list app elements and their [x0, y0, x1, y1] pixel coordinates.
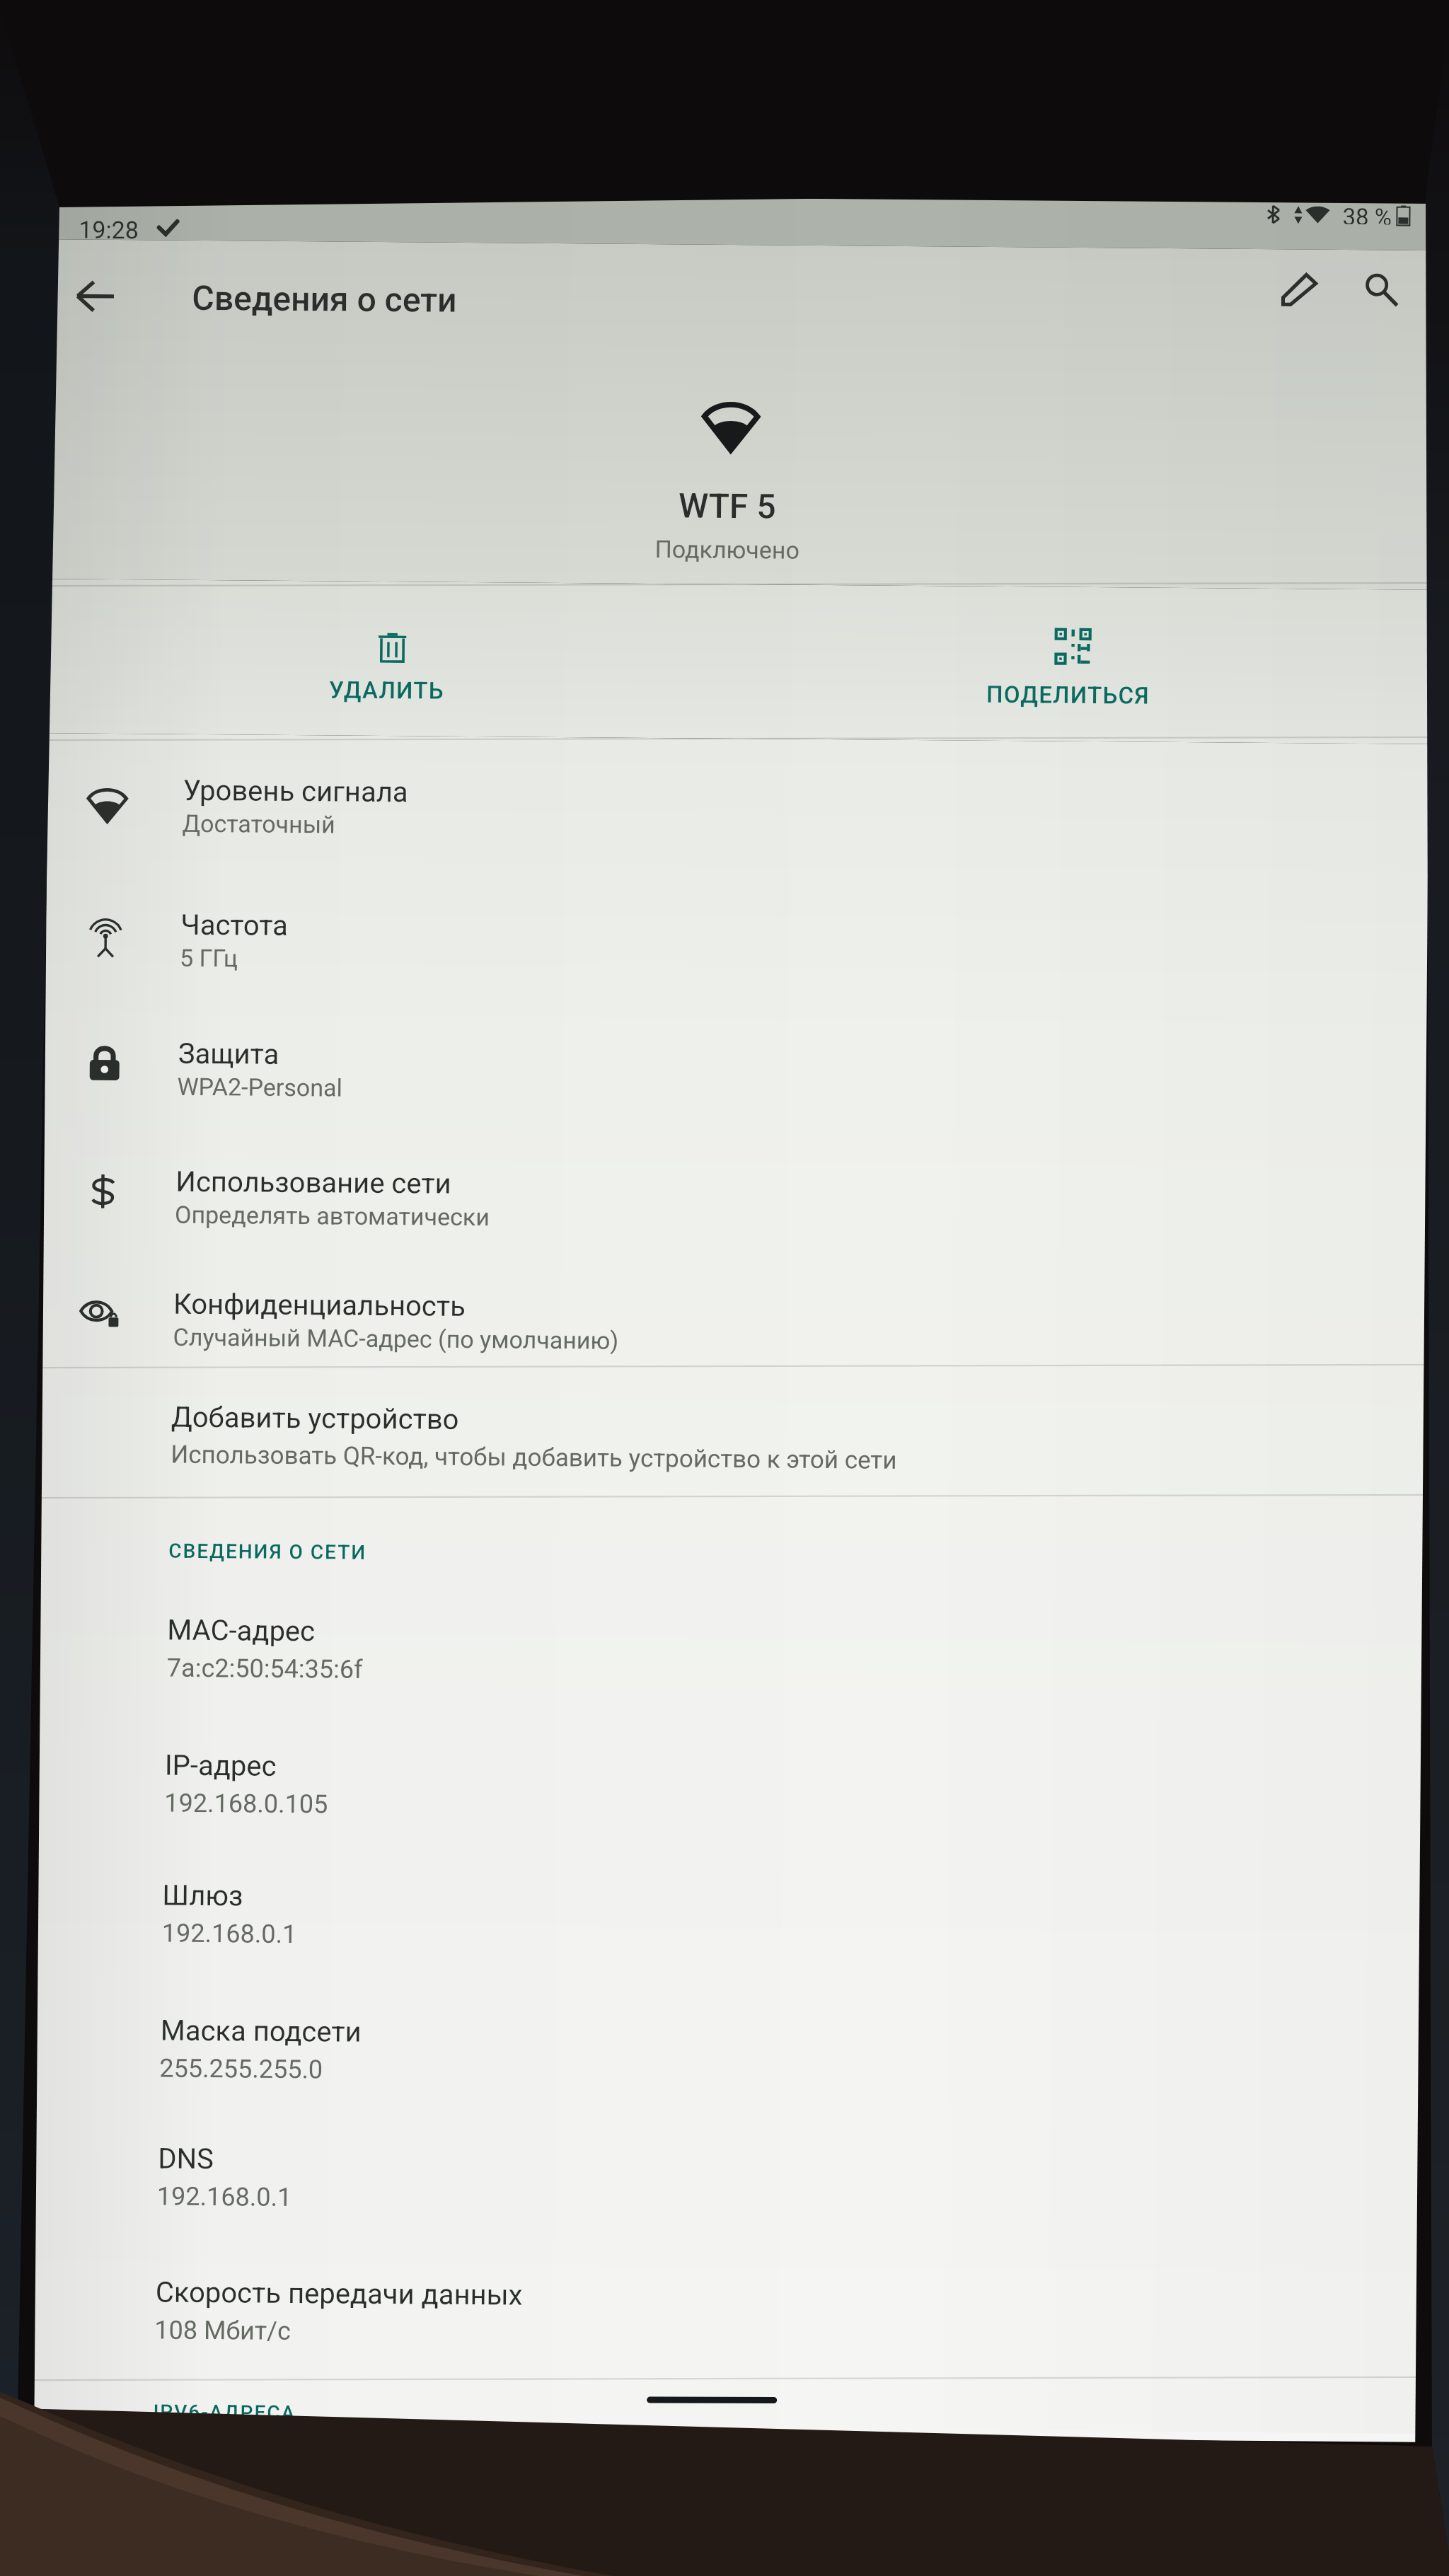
staticText: Использовать QR-код, чтобы добавить устр…: [171, 1440, 897, 1475]
staticText: СВЕДЕНИЯ О СЕТИ: [168, 1539, 367, 1564]
staticText: 108 Мбит/с: [154, 2315, 291, 2346]
button[interactable]: [44, 1124, 1426, 1262]
staticText: 255.255.255.0: [159, 2054, 323, 2085]
staticText: ПОДЕЛИТЬСЯ: [986, 680, 1150, 709]
staticText: IPV6-АДРЕСА: [153, 2400, 296, 2425]
staticText: 5 ГГц: [180, 944, 239, 972]
staticText: 7a:c2:50:54:35:6f: [167, 1653, 363, 1684]
staticText: 192.168.0.1: [157, 2182, 292, 2212]
staticText: УДАЛИТЬ: [329, 676, 444, 704]
staticText: Добавить устройство: [171, 1401, 459, 1436]
staticText: Конфиденциальность: [173, 1287, 466, 1323]
staticText: Шлюз: [162, 1879, 244, 1913]
staticText: DNS: [158, 2142, 214, 2176]
button[interactable]: [35, 2237, 1417, 2376]
button[interactable]: [738, 586, 1429, 743]
button[interactable]: [42, 1362, 1424, 1501]
button[interactable]: [38, 1840, 1420, 1979]
button[interactable]: [45, 996, 1427, 1134]
staticText: Защита: [178, 1037, 280, 1071]
staticText: 19:28: [79, 215, 139, 244]
button[interactable]: [46, 867, 1428, 1005]
button[interactable]: [43, 1246, 1425, 1385]
button[interactable]: [39, 1710, 1421, 1849]
button[interactable]: [37, 1975, 1419, 2114]
button[interactable]: Edit: [1261, 251, 1338, 328]
button[interactable]: [47, 732, 1429, 871]
button[interactable]: [36, 2103, 1418, 2242]
staticText: Скорость передачи данных: [155, 2276, 523, 2312]
button[interactable]: [48, 580, 739, 737]
staticText: WPA2-Personal: [177, 1072, 343, 1102]
staticText: Случайный MAC-адрес (по умолчанию): [173, 1323, 619, 1355]
staticText: WTF 5: [678, 486, 776, 526]
staticText: Частота: [181, 908, 288, 942]
staticText: 38 %: [1342, 203, 1392, 225]
staticText: 192.168.0.1: [162, 1918, 297, 1949]
staticText: Использование сети: [176, 1165, 452, 1200]
staticText: Уровень сигнала: [183, 774, 408, 809]
staticText: Подключено: [655, 535, 800, 564]
staticText: Сведения о сети: [192, 278, 458, 320]
staticText: Маска подсети: [160, 2014, 362, 2049]
staticText: MAC-адрес: [167, 1614, 315, 1648]
button[interactable]: Back: [57, 258, 134, 335]
staticText: Достаточный: [182, 809, 336, 839]
staticText: IP-адрес: [165, 1749, 277, 1783]
button[interactable]: Search: [1343, 250, 1420, 327]
staticText: Определять автоматически: [175, 1200, 490, 1231]
button[interactable]: [40, 1575, 1422, 1713]
staticText: 192.168.0.105: [164, 1788, 328, 1819]
